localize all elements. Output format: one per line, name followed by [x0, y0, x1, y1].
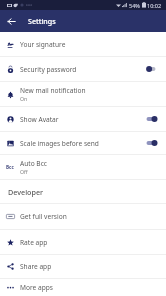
button[interactable]: More apps — [0, 279, 166, 296]
staticText: Settings — [28, 16, 56, 26]
button[interactable]: Rate app — [0, 230, 166, 254]
staticText: Auto Bcc — [20, 159, 47, 168]
button[interactable]: On — [145, 111, 158, 127]
staticText: Share app — [20, 262, 52, 271]
staticText: New mail notification — [20, 86, 86, 95]
button[interactable]: Show Avatar — [0, 107, 166, 131]
staticText: Off — [20, 168, 28, 175]
staticText: Security password — [20, 65, 77, 74]
staticText: Your signature — [20, 40, 66, 49]
button[interactable]: New mail notification — [0, 82, 166, 106]
button[interactable]: Share app — [0, 255, 166, 278]
button[interactable]: On — [145, 135, 158, 151]
staticText: Bcc — [6, 164, 14, 170]
staticText: More apps — [20, 283, 53, 292]
button[interactable]: Your signature — [0, 32, 166, 56]
staticText: Developer — [8, 187, 44, 197]
staticText: 10:02 — [147, 2, 162, 9]
staticText: Show Avatar — [20, 115, 59, 124]
button[interactable]: Security password — [0, 57, 166, 81]
button[interactable]: Scale images before send — [0, 132, 166, 154]
staticText: Scale images before send — [20, 139, 99, 148]
button[interactable]: Bcc — [0, 155, 166, 179]
staticText: Rate app — [20, 238, 48, 247]
staticText: Get full version — [20, 212, 67, 221]
button[interactable]: Back — [0, 10, 22, 32]
staticText: On — [20, 95, 28, 102]
button[interactable]: Get full version — [0, 204, 166, 229]
button[interactable]: Off — [145, 61, 158, 77]
staticText: 54% — [129, 2, 140, 9]
